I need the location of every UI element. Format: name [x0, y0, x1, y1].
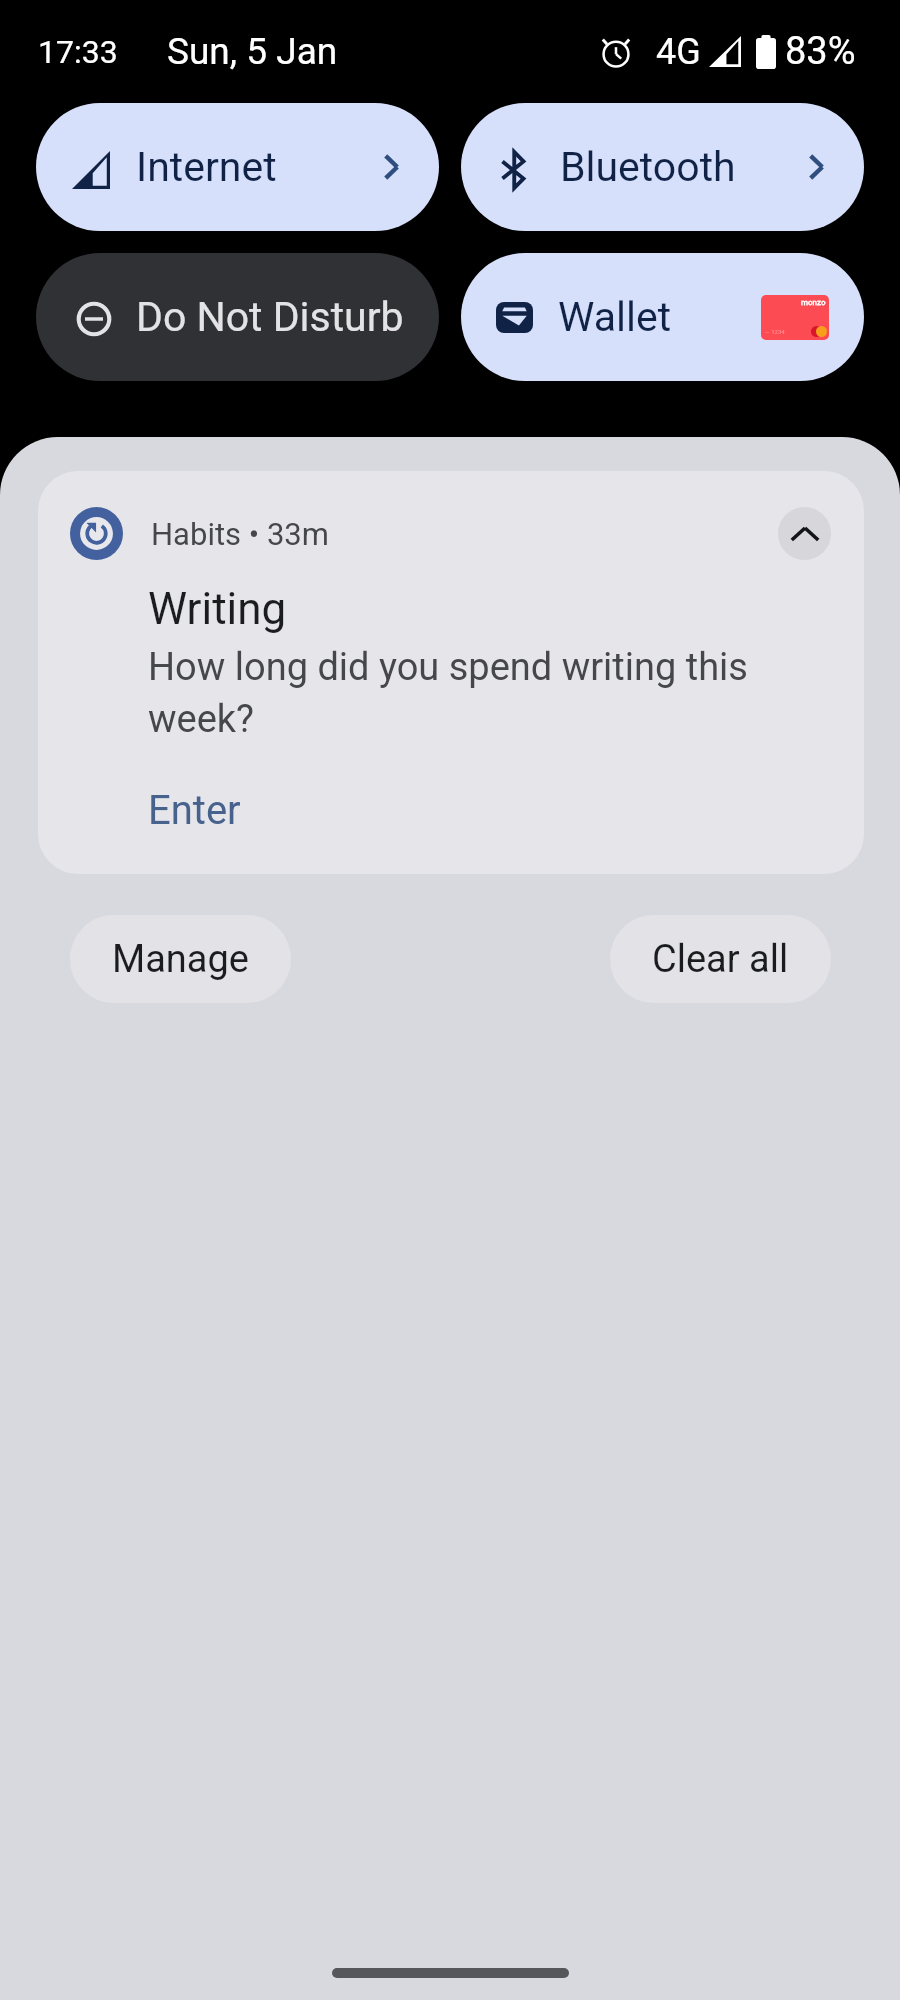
- staticText: Clear all: [652, 937, 789, 982]
- staticText: 83%: [785, 29, 856, 74]
- staticText: Wallet: [558, 293, 672, 341]
- staticText: 4G: [656, 31, 701, 73]
- staticText: Habits • 33m: [151, 516, 329, 552]
- button[interactable]: Clear all: [610, 915, 831, 1003]
- staticText: Enter: [148, 787, 241, 834]
- button[interactable]: Wallet: [461, 253, 864, 381]
- button[interactable]: Enter: [148, 787, 241, 834]
- button[interactable]: Collapse notification: [778, 507, 831, 560]
- staticText: 17:33: [38, 33, 118, 71]
- staticText: Sun, 5 Jan: [167, 30, 338, 73]
- staticText: monzo: [801, 298, 826, 307]
- staticText: Manage: [112, 937, 249, 982]
- button[interactable]: Do Not Disturb: [36, 253, 439, 381]
- staticText: Do Not Disturb: [136, 293, 404, 341]
- staticText: Writing: [148, 583, 287, 635]
- button[interactable]: Habits • 33m: [38, 471, 864, 874]
- staticText: Bluetooth: [560, 143, 736, 191]
- button[interactable]: Manage: [70, 915, 291, 1003]
- staticText: — 1234: [765, 328, 785, 335]
- button[interactable]: Internet: [36, 103, 439, 231]
- staticText: Internet: [136, 143, 277, 191]
- staticText: How long did you spend writing this week…: [148, 645, 794, 741]
- button[interactable]: Bluetooth: [461, 103, 864, 231]
